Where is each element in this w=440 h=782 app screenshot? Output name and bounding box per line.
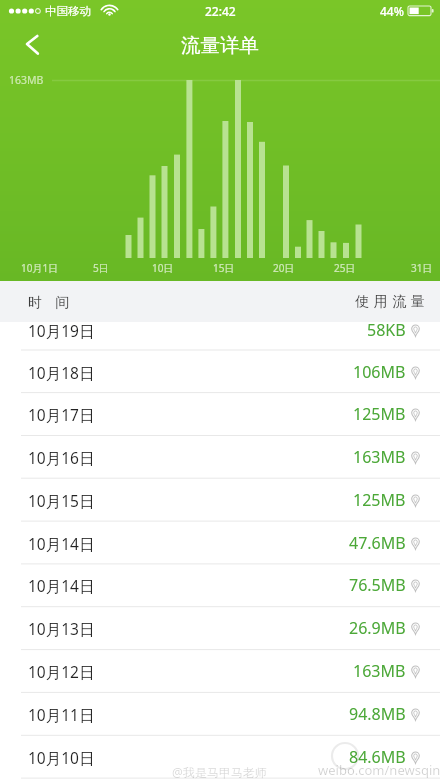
button[interactable]: 10月13日 bbox=[0, 607, 440, 649]
button[interactable]: 10月18日 bbox=[0, 351, 440, 393]
button[interactable]: 10月14日 bbox=[0, 564, 440, 606]
staticText: 22:42 bbox=[205, 3, 236, 19]
button[interactable]: 10月17日 bbox=[0, 393, 440, 435]
button[interactable]: 10月14日 bbox=[0, 522, 440, 564]
button[interactable]: 10月15日 bbox=[0, 479, 440, 521]
button[interactable]: 10月11日 bbox=[0, 693, 440, 735]
button[interactable]: 10月12日 bbox=[0, 650, 440, 692]
staticText: 76.5MB bbox=[349, 574, 406, 596]
staticText: 15日 bbox=[213, 261, 235, 275]
staticText: 163MB bbox=[353, 446, 406, 468]
staticText: 20日 bbox=[273, 261, 295, 275]
staticText: 10月18日 bbox=[28, 362, 95, 383]
staticText: 5日 bbox=[93, 261, 109, 275]
staticText: 25日 bbox=[334, 261, 356, 275]
staticText: 94.8MB bbox=[349, 703, 406, 725]
staticText: 26.9MB bbox=[349, 617, 406, 639]
staticText: 125MB bbox=[353, 489, 406, 511]
staticText: 使用流量 bbox=[353, 293, 427, 311]
staticText: weibo.com/newsqin bbox=[318, 761, 440, 779]
staticText: 10月12日 bbox=[28, 661, 95, 682]
staticText: 10月10日 bbox=[28, 747, 95, 768]
staticText: 84.6MB bbox=[349, 746, 406, 768]
staticText: 10日 bbox=[152, 261, 174, 275]
button[interactable]: Back bbox=[13, 24, 57, 68]
staticText: 163MB bbox=[9, 73, 44, 87]
staticText: 31日 bbox=[411, 261, 433, 275]
staticText: 10月14日 bbox=[28, 533, 95, 554]
button[interactable]: 10月16日 bbox=[0, 436, 440, 478]
button[interactable]: 10月10日 bbox=[0, 736, 440, 778]
staticText: 125MB bbox=[353, 403, 406, 425]
button[interactable]: 10月19日 bbox=[0, 322, 440, 350]
staticText: 10月13日 bbox=[28, 618, 95, 639]
staticText: @我是马甲马老师 bbox=[172, 764, 267, 780]
staticText: 10月14日 bbox=[28, 575, 95, 596]
staticText: 中国移动 bbox=[45, 4, 91, 18]
staticText: 10月17日 bbox=[28, 404, 95, 425]
staticText: 10月11日 bbox=[28, 704, 95, 725]
staticText: 163MB bbox=[353, 660, 406, 682]
staticText: 10月1日 bbox=[21, 261, 59, 275]
staticText: 流量详单 bbox=[181, 33, 259, 58]
staticText: 106MB bbox=[353, 361, 406, 383]
staticText: 10月19日 bbox=[28, 322, 95, 341]
staticText: 47.6MB bbox=[349, 532, 406, 554]
staticText: 10月15日 bbox=[28, 490, 95, 511]
staticText: 44% bbox=[380, 3, 404, 19]
staticText: 58KB bbox=[367, 322, 406, 341]
staticText: 时 间 bbox=[28, 292, 72, 311]
staticText: 10月16日 bbox=[28, 447, 95, 468]
